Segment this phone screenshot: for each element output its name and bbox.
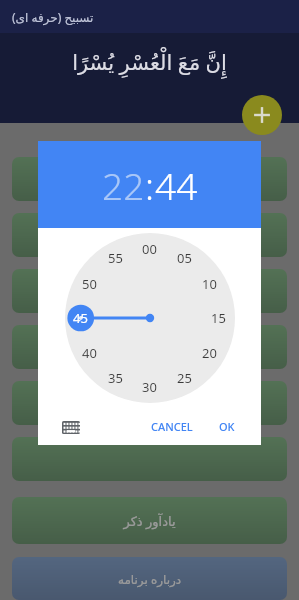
staticText: : [145,160,155,210]
staticText: 50 [82,275,97,293]
staticText: 55 [108,249,123,267]
button[interactable] [12,213,287,257]
staticText: 45 [73,309,88,327]
staticText: 40 [82,344,97,362]
staticText: OK [219,419,235,434]
button[interactable] [12,437,287,481]
button[interactable]: Add [242,95,282,135]
staticText: 00 [142,240,157,258]
staticText: 35 [108,369,123,387]
button[interactable] [12,157,287,201]
staticText: إِنَّ مَعَ الْعُسْرِ يُسْرًا [72,48,227,77]
button[interactable]: OK [211,413,243,440]
staticText: CANCEL [151,419,193,434]
button[interactable]: Switch to text input [56,412,86,442]
staticText: 10 [202,275,217,293]
staticText: 05 [177,249,192,267]
staticText: تسبیح (حرفه ای) [12,9,94,25]
staticText: درباره برنامه [118,571,182,587]
staticText: یادآور ذکر [123,512,176,530]
button[interactable] [12,325,287,369]
staticText: 30 [142,378,157,396]
button[interactable] [12,381,287,425]
button[interactable]: 22 [102,160,145,210]
button[interactable]: 44 [155,160,198,210]
button[interactable]: یادآور ذکر [12,497,287,544]
button[interactable] [65,233,235,403]
staticText: 20 [202,344,217,362]
button[interactable]: CANCEL [143,413,201,440]
staticText: 25 [177,369,192,387]
button[interactable] [12,269,287,313]
staticText: 15 [211,309,226,327]
button[interactable]: درباره برنامه [12,557,287,600]
